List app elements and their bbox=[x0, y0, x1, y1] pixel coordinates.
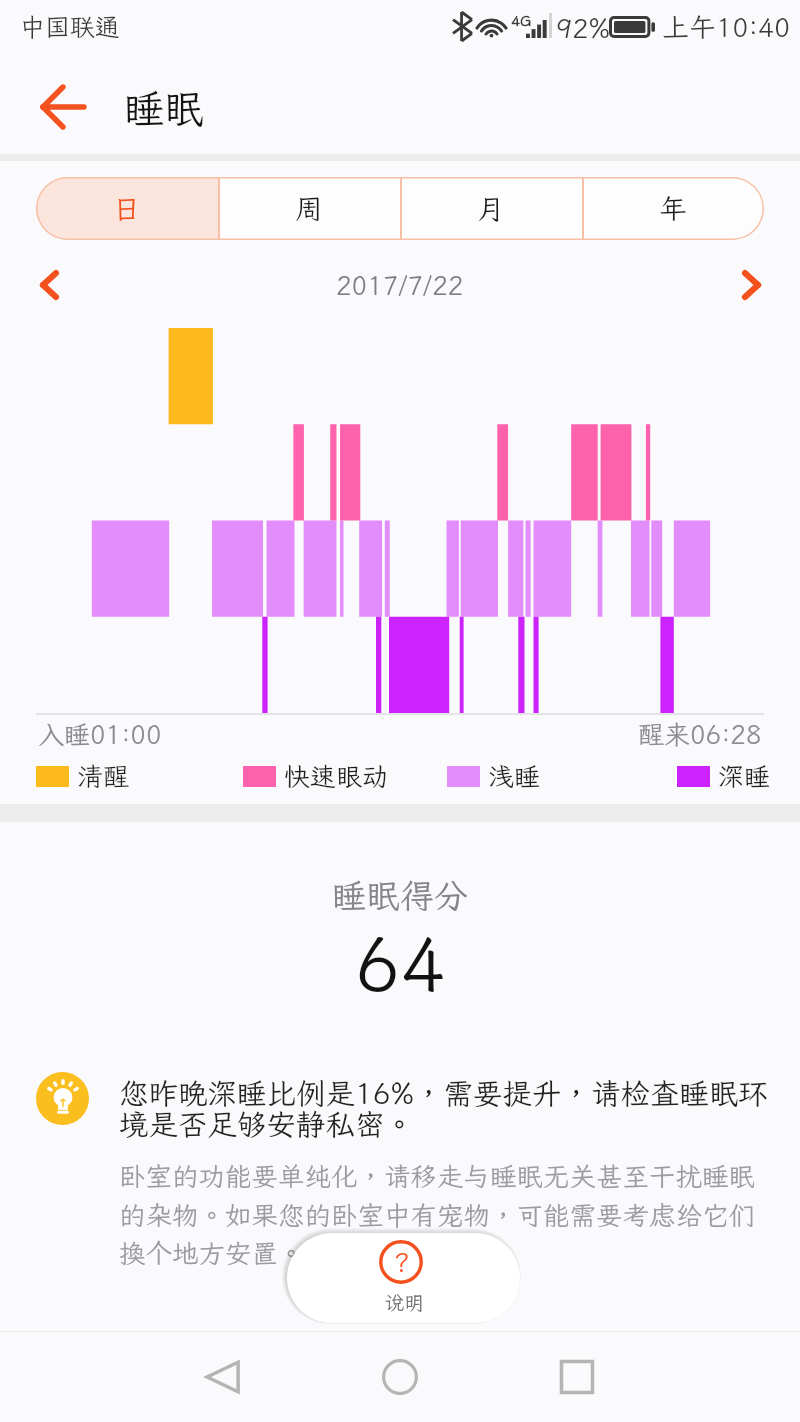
button[interactable]: Back bbox=[188, 1342, 258, 1412]
staticText: 64 bbox=[355, 914, 446, 1013]
staticText: 上午10:40 bbox=[662, 9, 791, 45]
button[interactable]: ? bbox=[287, 1233, 520, 1323]
staticText: ? bbox=[393, 1244, 410, 1280]
staticText: 周 bbox=[295, 190, 324, 227]
staticText: 入睡01:00 bbox=[38, 717, 162, 751]
staticText: 清醒 bbox=[77, 759, 130, 793]
button[interactable]: Recents bbox=[542, 1342, 612, 1412]
button[interactable]: 月 bbox=[400, 177, 582, 240]
staticText: 深睡 bbox=[718, 759, 771, 793]
staticText: 日 bbox=[113, 190, 142, 227]
staticText: 年 bbox=[659, 190, 688, 227]
staticText: 睡眠 bbox=[124, 82, 204, 135]
button[interactable]: 快速眼动 bbox=[243, 759, 389, 793]
staticText: 卧室的功能要单纯化，请移走与睡眠无关甚至干扰睡眠的杂物。如果您的卧室中有宠物，可… bbox=[119, 1159, 779, 1270]
staticText: 2017/7/22 bbox=[336, 268, 464, 302]
button[interactable]: 年 bbox=[582, 177, 764, 240]
button[interactable]: 周 bbox=[218, 177, 400, 240]
button[interactable]: 深睡 bbox=[677, 759, 771, 793]
button[interactable]: Back bbox=[31, 75, 95, 139]
staticText: 您昨晚深睡比例是16%，需要提升，请检查睡眠环境是否足够安静私密。 bbox=[119, 1074, 779, 1143]
button[interactable]: 清醒 bbox=[36, 759, 130, 793]
staticText: 浅睡 bbox=[488, 759, 541, 793]
staticText: 睡眠得分 bbox=[332, 873, 468, 918]
button[interactable]: 日 bbox=[36, 177, 218, 240]
staticText: 4G bbox=[511, 11, 532, 31]
button[interactable]: Next day bbox=[727, 261, 775, 309]
staticText: 醒来06:28 bbox=[638, 717, 762, 751]
button[interactable]: Home bbox=[365, 1342, 435, 1412]
staticText: 说明 bbox=[384, 1289, 424, 1315]
staticText: 92% bbox=[556, 10, 610, 46]
button[interactable]: Previous day bbox=[25, 261, 73, 309]
staticText: 中国联通 bbox=[20, 10, 121, 43]
staticText: 月 bbox=[477, 190, 506, 227]
staticText: 快速眼动 bbox=[284, 759, 389, 793]
button[interactable]: 浅睡 bbox=[447, 759, 541, 793]
